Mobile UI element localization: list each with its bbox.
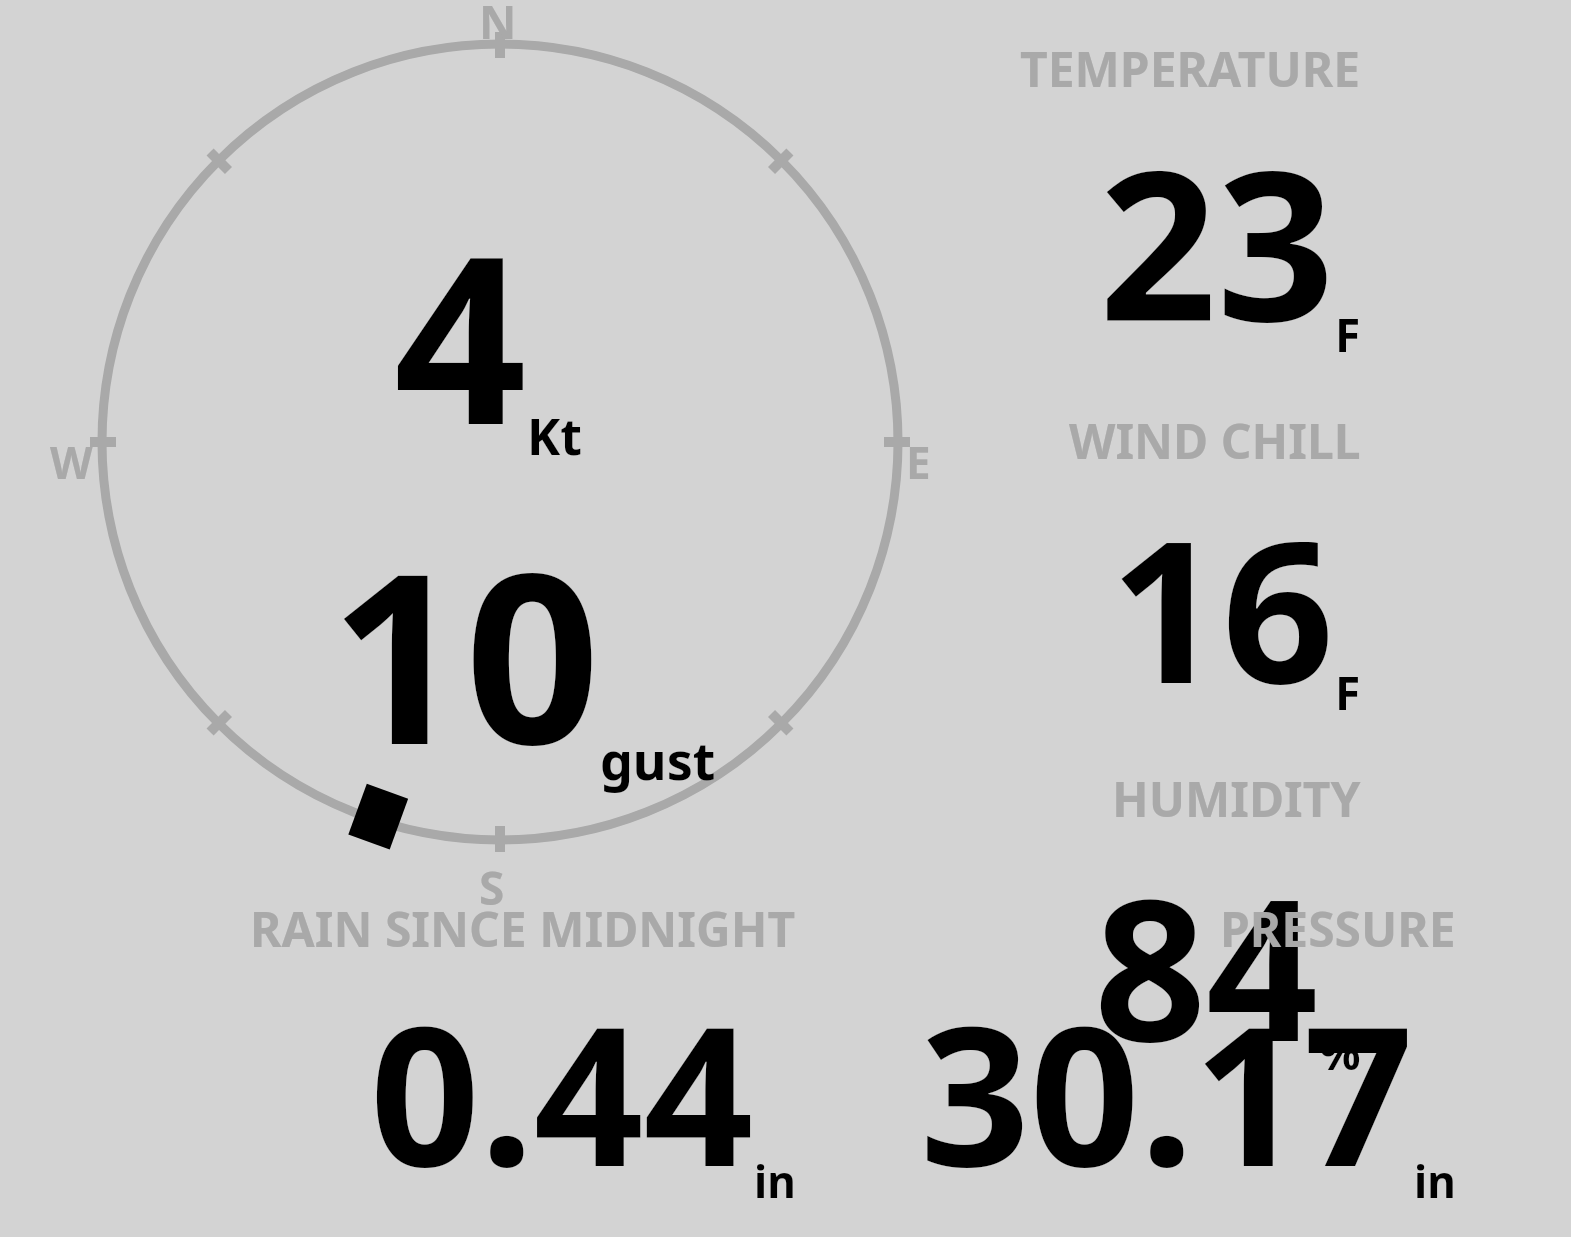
button[interactable]: WIND CHILL (1069, 408, 1361, 740)
staticText: S (479, 856, 505, 919)
staticText: 23 (1099, 101, 1335, 382)
button[interactable]: 4 (394, 176, 582, 492)
staticText: 10 (330, 492, 600, 813)
staticText: F (1335, 661, 1361, 724)
staticText: gust (600, 724, 716, 795)
staticText: HUMIDITY (1112, 766, 1361, 831)
staticText: in (1414, 1151, 1456, 1211)
staticText: W (50, 432, 93, 492)
staticText: 16 (1110, 473, 1335, 740)
staticText: Kt (527, 402, 582, 470)
button[interactable]: TEMPERATURE (1020, 36, 1361, 382)
button[interactable]: RAIN SINCE MIDNIGHT (250, 896, 796, 1223)
staticText: % (1319, 1021, 1361, 1084)
staticText: RAIN SINCE MIDNIGHT (250, 896, 796, 961)
button[interactable]: PRESSURE (920, 896, 1456, 1223)
staticText: 30.17 (920, 961, 1414, 1223)
button[interactable]: Wind direction compass (88, 30, 912, 854)
staticText: TEMPERATURE (1020, 36, 1361, 101)
button[interactable]: 10 (330, 492, 716, 813)
button[interactable]: HUMIDITY (1094, 766, 1361, 1098)
staticText: 0.44 (370, 961, 754, 1223)
staticText: PRESSURE (1220, 896, 1456, 961)
staticText: F (1335, 303, 1361, 366)
staticText: WIND CHILL (1069, 408, 1361, 473)
staticText: N (479, 0, 517, 53)
staticText: 4 (394, 176, 527, 492)
staticText: in (754, 1151, 796, 1211)
staticText: E (906, 432, 931, 492)
staticText: 84 (1094, 831, 1319, 1098)
